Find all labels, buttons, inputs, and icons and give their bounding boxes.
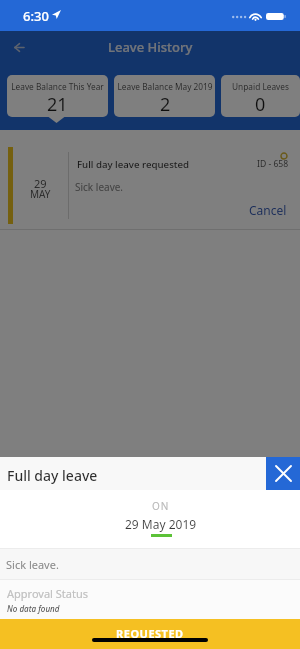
staticText: 29 — [34, 176, 47, 191]
staticText: 0 — [255, 92, 266, 117]
staticText: REQUESTED — [116, 626, 184, 641]
staticText: ID - 658 — [257, 158, 289, 170]
button[interactable]: Leave Balance May 2019 — [114, 75, 215, 117]
staticText: 6:30 — [23, 7, 49, 25]
staticText: ON — [152, 499, 170, 513]
staticText: 21 — [47, 92, 68, 117]
staticText: Sick leave. — [75, 180, 124, 194]
staticText: MAY — [30, 187, 51, 201]
staticText: Full day leave — [7, 466, 98, 485]
button[interactable]: Leave Balance This Year — [7, 75, 108, 117]
button[interactable]: Cancel — [249, 202, 287, 218]
staticText: Full day leave requested — [77, 158, 190, 171]
button[interactable]: Unpaid Leaves — [221, 75, 300, 117]
staticText: Unpaid Leaves — [232, 81, 289, 92]
button[interactable]: REQUESTED — [0, 619, 300, 649]
staticText: 2 — [160, 92, 171, 117]
staticText: Approval Status — [7, 586, 88, 601]
staticText: Leave Balance This Year — [11, 81, 104, 92]
staticText: Leave History — [108, 38, 193, 56]
staticText: 29 May 2019 — [125, 516, 197, 532]
button[interactable]: Close — [266, 457, 300, 490]
button[interactable]: 29 — [0, 130, 300, 229]
staticText: Sick leave. — [6, 557, 59, 572]
staticText: Leave Balance May 2019 — [117, 81, 213, 92]
staticText: No data found — [7, 603, 60, 614]
button[interactable]: Back — [5, 33, 33, 61]
